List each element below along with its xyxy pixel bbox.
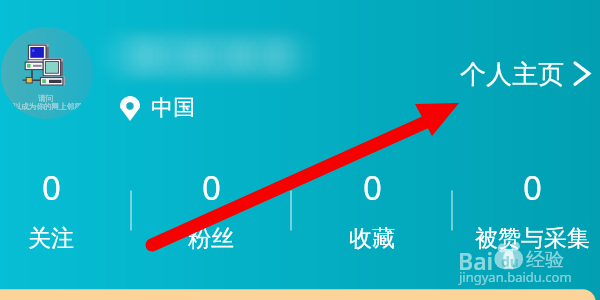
button[interactable]: 个人主页 <box>452 52 600 94</box>
staticText: 0 <box>42 165 61 210</box>
staticText: du <box>501 252 519 271</box>
button[interactable]: 0 <box>133 165 289 253</box>
button[interactable]: 0 <box>294 165 450 253</box>
staticText: 0 <box>363 165 382 210</box>
staticText: 经验 <box>526 248 564 272</box>
staticText: 中国 <box>151 94 195 122</box>
staticText: 可以成为你的网上邻居 <box>6 102 82 112</box>
staticText: 关注 <box>28 224 74 253</box>
staticText: 收藏 <box>349 224 395 253</box>
staticText: 个人主页 <box>460 58 564 91</box>
staticText: 请问 <box>38 93 54 103</box>
staticText: 粉丝 <box>188 224 234 253</box>
staticText: 被赞与采集 <box>475 224 590 253</box>
staticText: 0 <box>202 165 221 210</box>
button[interactable]: User avatar <box>1 27 93 119</box>
button[interactable]: 0 <box>454 165 600 253</box>
staticText: 0 <box>523 165 542 210</box>
button[interactable]: 0 <box>0 165 129 253</box>
staticText: Bai <box>458 245 494 276</box>
staticText: jingyan.baidu.com <box>459 268 572 286</box>
button[interactable]: 中国 <box>120 94 195 122</box>
